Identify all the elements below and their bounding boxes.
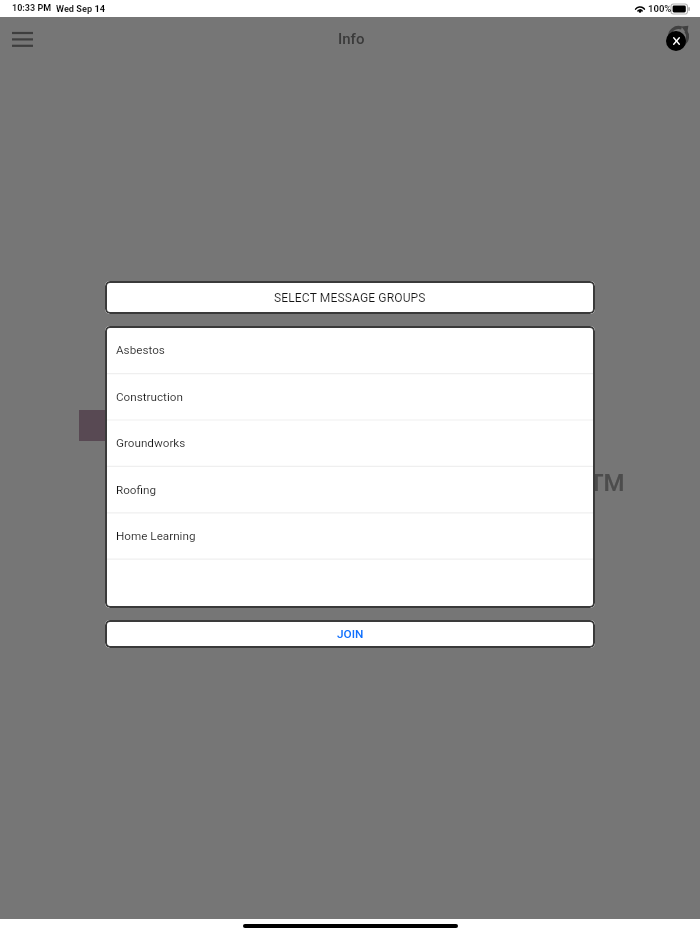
staticText: Info <box>338 30 365 48</box>
button[interactable]: Roofing <box>105 467 595 513</box>
button[interactable]: Asbestos <box>105 327 595 373</box>
button[interactable]: Menu <box>4 21 40 57</box>
button[interactable]: Refresh <box>667 25 691 49</box>
button[interactable]: JOIN <box>105 620 595 648</box>
staticText: Groundworks <box>116 436 186 450</box>
staticText: TM <box>589 469 625 497</box>
button[interactable]: Home Learning <box>105 513 595 559</box>
button[interactable]: Construction <box>105 374 595 420</box>
button[interactable]: Groundworks <box>105 420 595 466</box>
staticText: Construction <box>116 390 183 404</box>
staticText: 100% <box>648 3 672 14</box>
staticText: Asbestos <box>116 343 165 357</box>
staticText: SELECT MESSAGE GROUPS <box>274 291 426 305</box>
staticText: JOIN <box>337 627 364 641</box>
staticText: Wed Sep 14 <box>56 3 105 14</box>
button[interactable]: SELECT MESSAGE GROUPS <box>105 281 595 314</box>
staticText: Roofing <box>116 483 157 497</box>
staticText: 10:33 PM <box>12 3 52 14</box>
button[interactable]: Close <box>666 31 686 51</box>
staticText: Home Learning <box>116 529 196 543</box>
